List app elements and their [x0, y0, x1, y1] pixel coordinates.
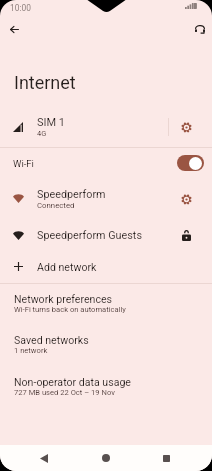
button[interactable]: Secured network [173, 222, 199, 248]
staticText: 1 network [14, 346, 48, 355]
staticText: Saved networks [14, 334, 89, 346]
button[interactable]: Home [93, 445, 119, 471]
button[interactable]: Speedperform [0, 181, 212, 216]
staticText: Add network [37, 261, 97, 273]
button[interactable]: SIM 1 [0, 107, 212, 147]
button[interactable]: Wi-Fi toggle [177, 155, 204, 171]
button[interactable]: Recents [153, 445, 179, 471]
button[interactable]: Speedperform Guests [0, 217, 212, 253]
staticText: Internet [14, 72, 76, 93]
staticText: Speedperform Guests [37, 229, 142, 242]
button[interactable]: Saved networks [0, 324, 212, 365]
button[interactable]: Non-operator data usage [0, 366, 212, 407]
staticText: 4G [37, 129, 47, 138]
button[interactable]: Back [31, 445, 57, 471]
staticText: 727 MB used 22 Oct – 19 Nov [14, 388, 115, 397]
button[interactable]: Network settings [173, 186, 199, 212]
button[interactable]: SIM settings [173, 114, 199, 140]
button[interactable]: Add network [0, 253, 212, 280]
staticText: Network preferences [14, 293, 113, 305]
button[interactable]: Wi-Fi [0, 148, 212, 178]
staticText: Connected [37, 201, 75, 210]
button[interactable]: Support [188, 17, 212, 41]
staticText: SIM 1 [37, 116, 66, 129]
button[interactable]: Back [2, 17, 26, 41]
button[interactable]: Network preferences [0, 283, 212, 324]
staticText: Wi-Fi [13, 158, 34, 169]
staticText: Speedperform [37, 188, 106, 201]
staticText: Non-operator data usage [14, 376, 131, 388]
staticText: 10:00 [10, 3, 31, 13]
staticText: Wi-Fi turns back on automatically [14, 305, 126, 314]
